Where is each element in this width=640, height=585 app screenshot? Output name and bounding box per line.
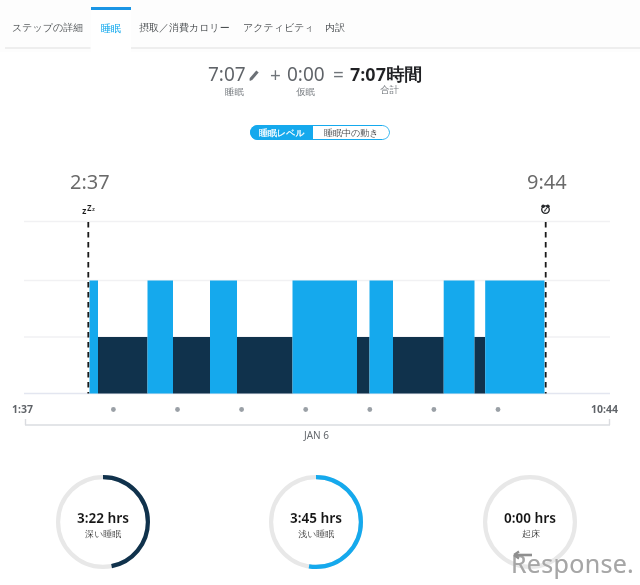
staticText: = [333, 62, 344, 88]
button[interactable]: Edit sleep time [248, 69, 260, 81]
staticText: ステップの詳細 [12, 21, 84, 34]
staticText: 1:37 [12, 402, 33, 416]
staticText: 睡眠中の動き [324, 127, 379, 138]
staticText: 0:00 hrs [504, 509, 557, 527]
staticText: + [270, 62, 281, 88]
staticText: z [82, 204, 87, 216]
staticText: 浅い睡眠 [298, 528, 335, 539]
staticText: 睡眠レベル [259, 127, 305, 138]
staticText: 深い睡眠 [85, 528, 122, 539]
staticText: z [92, 205, 95, 213]
button[interactable]: 3:45 hrs [269, 475, 363, 569]
button[interactable]: 睡眠中の動き [313, 125, 390, 140]
staticText: 9:44 [527, 168, 567, 195]
staticText: 睡眠 [225, 86, 244, 98]
button[interactable]: 0:00 hrs [483, 475, 577, 569]
button[interactable]: 3:22 hrs [56, 475, 150, 569]
staticText: 10:44 [591, 402, 618, 416]
button[interactable]: ステップの詳細 [3, 0, 92, 52]
staticText: 内訳 [325, 21, 345, 34]
staticText: 合計 [380, 84, 399, 96]
staticText: 摂取／消費カロリー [139, 21, 230, 34]
other: Asleep [81, 200, 97, 216]
other: Alarm [541, 204, 550, 214]
staticText: 3:45 hrs [290, 509, 343, 527]
button[interactable]: 睡眠 [91, 7, 131, 52]
staticText: Z [87, 202, 92, 213]
button[interactable]: 摂取／消費カロリー [131, 0, 238, 52]
staticText: 0:00 [287, 61, 325, 87]
button[interactable]: 内訳 [314, 0, 355, 52]
staticText: 2:37 [70, 168, 110, 195]
staticText: 7:07 [208, 61, 246, 87]
staticText: JAN 6 [304, 428, 330, 442]
staticText: 起床 [522, 528, 540, 539]
button[interactable]: 睡眠レベル [250, 125, 313, 140]
staticText: Response. [511, 546, 635, 580]
staticText: 睡眠 [101, 22, 121, 35]
button[interactable]: アクティビティ [243, 0, 311, 52]
staticText: 3:22 hrs [77, 509, 130, 527]
staticText: 仮眠 [296, 86, 315, 98]
staticText: アクティビティ [243, 21, 311, 34]
staticText: 7:07時間 [350, 62, 422, 87]
